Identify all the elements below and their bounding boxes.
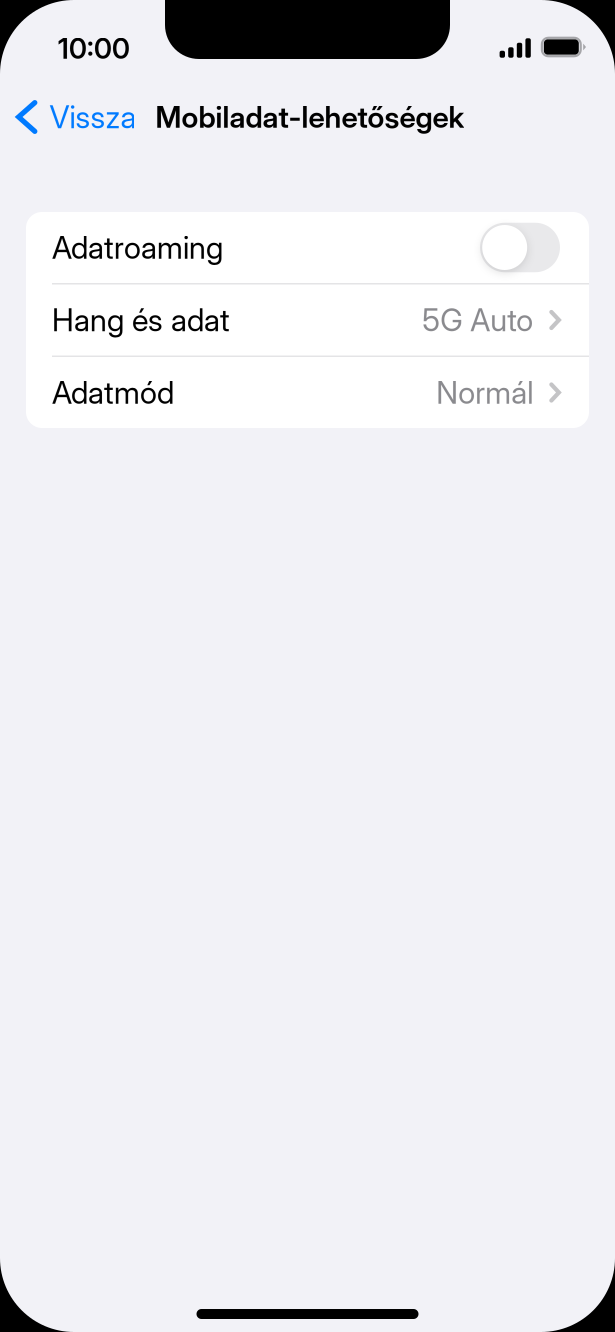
button[interactable]: Hang és adat [26, 284, 589, 355]
staticText: 10:00 [58, 32, 130, 65]
staticText: Hang és adat [52, 301, 230, 338]
staticText: Mobiladat-lehetőségek [155, 99, 464, 135]
staticText: 5G Auto [422, 301, 533, 338]
button[interactable]: Vissza [0, 88, 155, 146]
staticText: Adatmód [52, 374, 174, 411]
staticText: Vissza [49, 98, 136, 135]
staticText: Adatroaming [52, 229, 223, 266]
button[interactable]: Adatmód [26, 357, 589, 428]
button[interactable]: Adatroaming [480, 223, 560, 272]
staticText: Normál [436, 374, 533, 411]
